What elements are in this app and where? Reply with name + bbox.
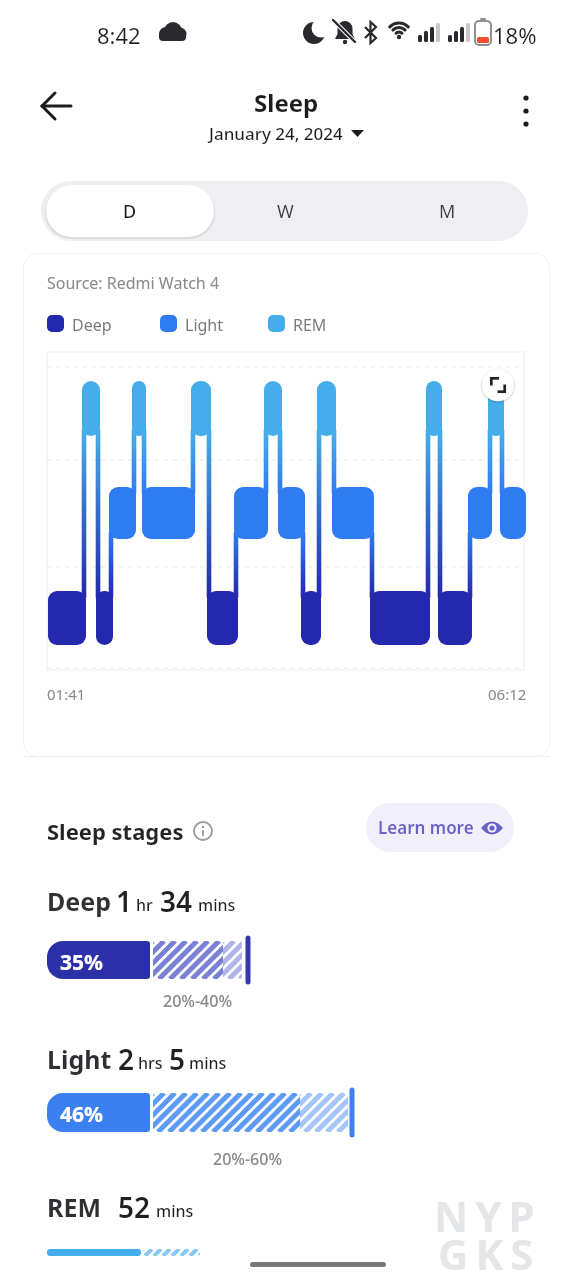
staticText: hr	[136, 894, 153, 916]
staticText: REM	[47, 1190, 101, 1224]
button[interactable]	[505, 90, 547, 136]
staticText: 06:12	[488, 684, 527, 704]
staticText: NYP	[434, 1187, 542, 1244]
staticText: 52	[118, 1188, 151, 1226]
staticText: hrs	[138, 1052, 163, 1074]
staticText: GKS	[438, 1225, 541, 1280]
staticText: 5	[169, 1040, 186, 1078]
staticText: 1	[116, 882, 133, 920]
staticText: mins	[189, 1052, 227, 1074]
staticText: 8:42	[97, 20, 141, 50]
staticText: 34	[160, 882, 193, 920]
button[interactable]: W	[204, 181, 366, 241]
staticText: Sleep	[254, 86, 319, 119]
staticText: Deep	[47, 884, 111, 918]
staticText: Learn more	[378, 816, 474, 839]
staticText: 18%	[493, 20, 537, 50]
button[interactable]: M	[366, 181, 528, 241]
button[interactable]: January 24, 2024	[209, 122, 364, 145]
staticText: M	[439, 199, 456, 224]
staticText: 2	[118, 1040, 135, 1078]
staticText: Light	[185, 314, 224, 336]
staticText: Sleep stages	[47, 816, 184, 846]
staticText: Deep	[72, 314, 112, 336]
staticText: D	[123, 199, 137, 224]
staticText: mins	[198, 894, 236, 916]
staticText: 46%	[60, 1100, 103, 1129]
button[interactable]: D	[46, 185, 214, 237]
button[interactable]	[481, 368, 515, 402]
staticText: Source: Redmi Watch 4	[47, 272, 220, 294]
staticText: 20%-40%	[163, 990, 233, 1012]
staticText: 20%-60%	[213, 1148, 283, 1170]
staticText: January 24, 2024	[209, 122, 343, 145]
staticText: W	[277, 199, 294, 224]
staticText: Light	[47, 1042, 112, 1076]
staticText: 01:41	[47, 684, 86, 704]
button[interactable]: Learn more	[366, 803, 514, 852]
staticText: REM	[293, 314, 327, 336]
button[interactable]	[30, 82, 78, 130]
staticText: mins	[156, 1200, 194, 1222]
staticText: 35%	[60, 948, 103, 977]
